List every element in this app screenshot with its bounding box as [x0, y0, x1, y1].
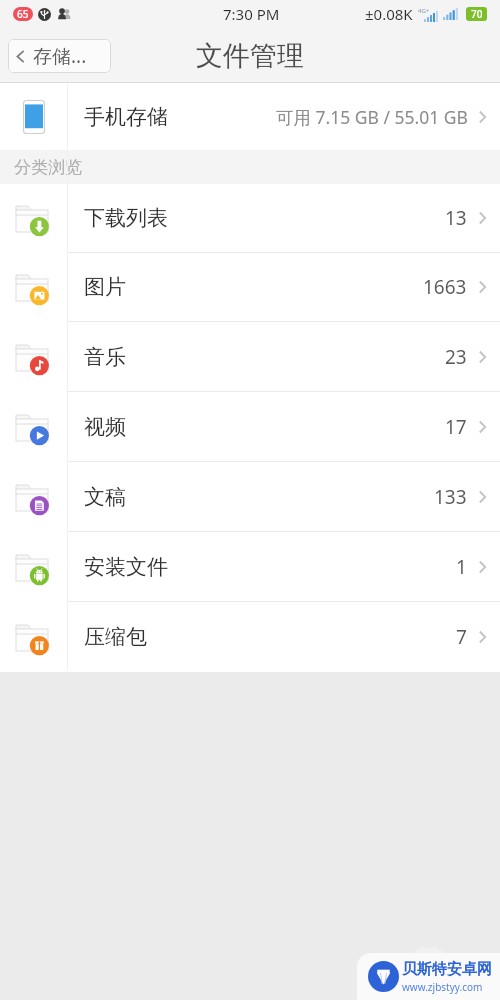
staticText: 文件管理 [196, 39, 304, 73]
staticText: 1 [456, 554, 467, 580]
button[interactable]: 音乐 [0, 322, 500, 391]
staticText: 17 [445, 414, 467, 440]
staticText: www.zjbstyy.com [402, 980, 483, 994]
button[interactable]: 安装文件 [0, 532, 500, 601]
button[interactable]: 图片 [0, 253, 500, 321]
staticText: 70 [471, 7, 483, 21]
staticText: 存储... [33, 43, 87, 69]
staticText: 文稿 [84, 484, 126, 510]
button[interactable]: 文稿 [0, 462, 500, 531]
staticText: 贝斯特安卓网 [402, 960, 492, 979]
staticText: 65 [17, 7, 29, 21]
button[interactable]: 下载列表 [0, 184, 500, 252]
staticText: 视频 [84, 414, 126, 440]
button[interactable]: 返回存储 [8, 39, 111, 73]
staticText: 23 [445, 344, 467, 370]
staticText: 133 [434, 484, 467, 510]
button[interactable]: 压缩包 [0, 602, 500, 672]
button[interactable]: 手机存储 [0, 83, 500, 150]
staticText: 下载列表 [84, 205, 168, 231]
staticText: ±0.08K [365, 4, 413, 24]
staticText: 分类浏览 [14, 157, 82, 178]
staticText: 7:30 PM [223, 4, 280, 24]
staticText: 1663 [423, 274, 467, 300]
staticText: 安装文件 [84, 554, 168, 580]
staticText: 手机存储 [84, 104, 168, 130]
staticText: 13 [445, 205, 467, 231]
button[interactable]: 视频 [0, 392, 500, 461]
staticText: 4G+ [418, 7, 430, 15]
staticText: 音乐 [84, 344, 126, 370]
staticText: 可用 7.15 GB / 55.01 GB [276, 105, 468, 129]
staticText: 图片 [84, 274, 126, 300]
staticText: 7 [456, 624, 467, 650]
staticText: 压缩包 [84, 624, 147, 650]
